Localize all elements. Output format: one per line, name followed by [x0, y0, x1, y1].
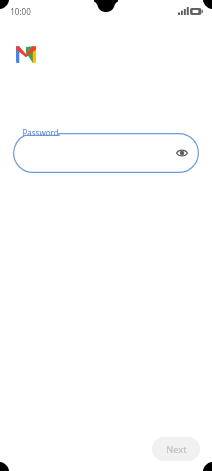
staticText: 10:00: [10, 6, 31, 17]
button[interactable]: Show password: [172, 143, 192, 163]
staticText: Next: [166, 443, 187, 455]
staticText: Password: [22, 127, 59, 138]
button[interactable]: Password: [13, 133, 199, 173]
button[interactable]: Next: [152, 437, 200, 461]
